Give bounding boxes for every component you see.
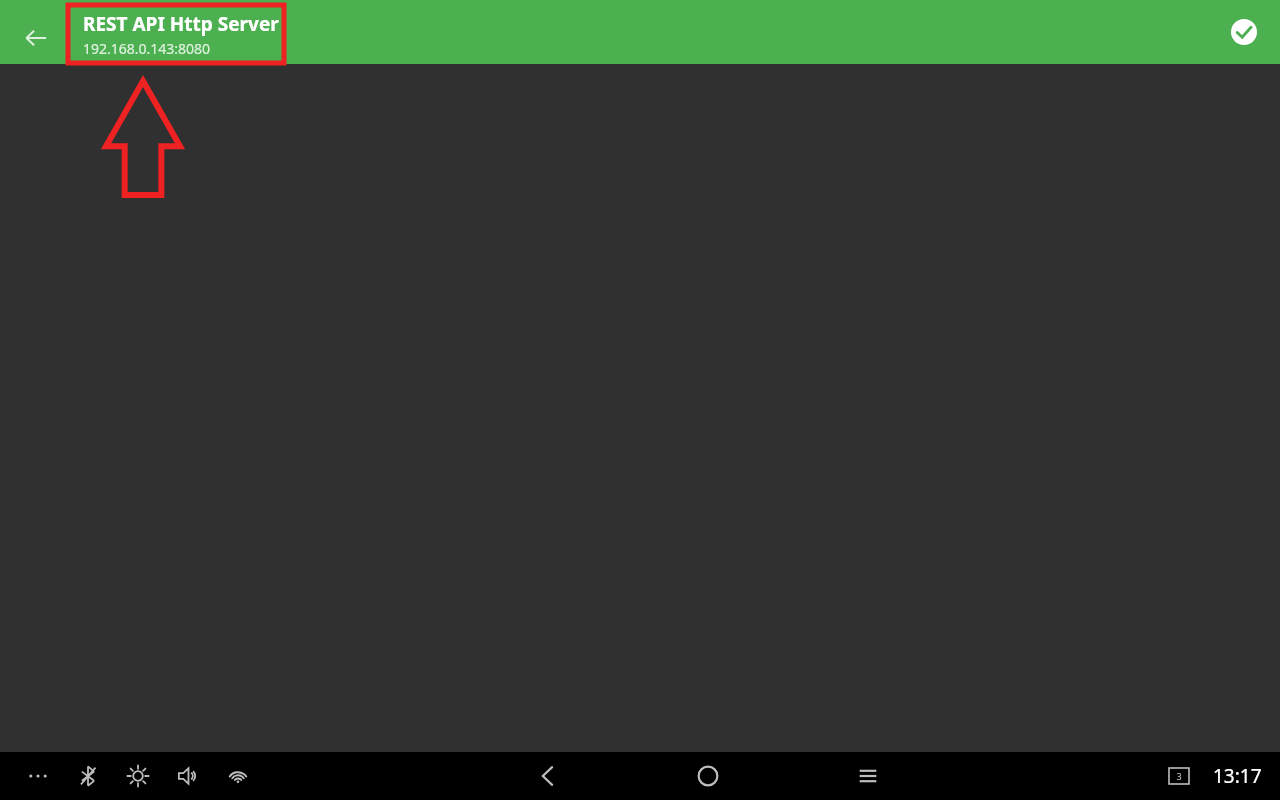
button[interactable]: Brightness	[118, 756, 158, 796]
button[interactable]: Home	[688, 756, 728, 796]
button[interactable]: Bluetooth off	[68, 756, 108, 796]
button[interactable]: Wi-Fi	[218, 756, 258, 796]
button[interactable]: More options	[18, 756, 58, 796]
staticText: 3	[1176, 770, 1182, 782]
button[interactable]: Back	[528, 756, 568, 796]
button[interactable]: Back	[12, 14, 60, 62]
button[interactable]: Done	[1222, 10, 1266, 54]
button[interactable]: Recent apps	[848, 756, 888, 796]
button[interactable]: REST API Http Server	[68, 5, 284, 63]
staticText: 13:17	[1213, 763, 1262, 789]
staticText: REST API Http Server	[83, 11, 279, 37]
button[interactable]: Open apps: 3	[1159, 756, 1199, 796]
staticText: 192.168.0.143:8080	[83, 39, 211, 58]
button[interactable]: Volume	[168, 756, 208, 796]
